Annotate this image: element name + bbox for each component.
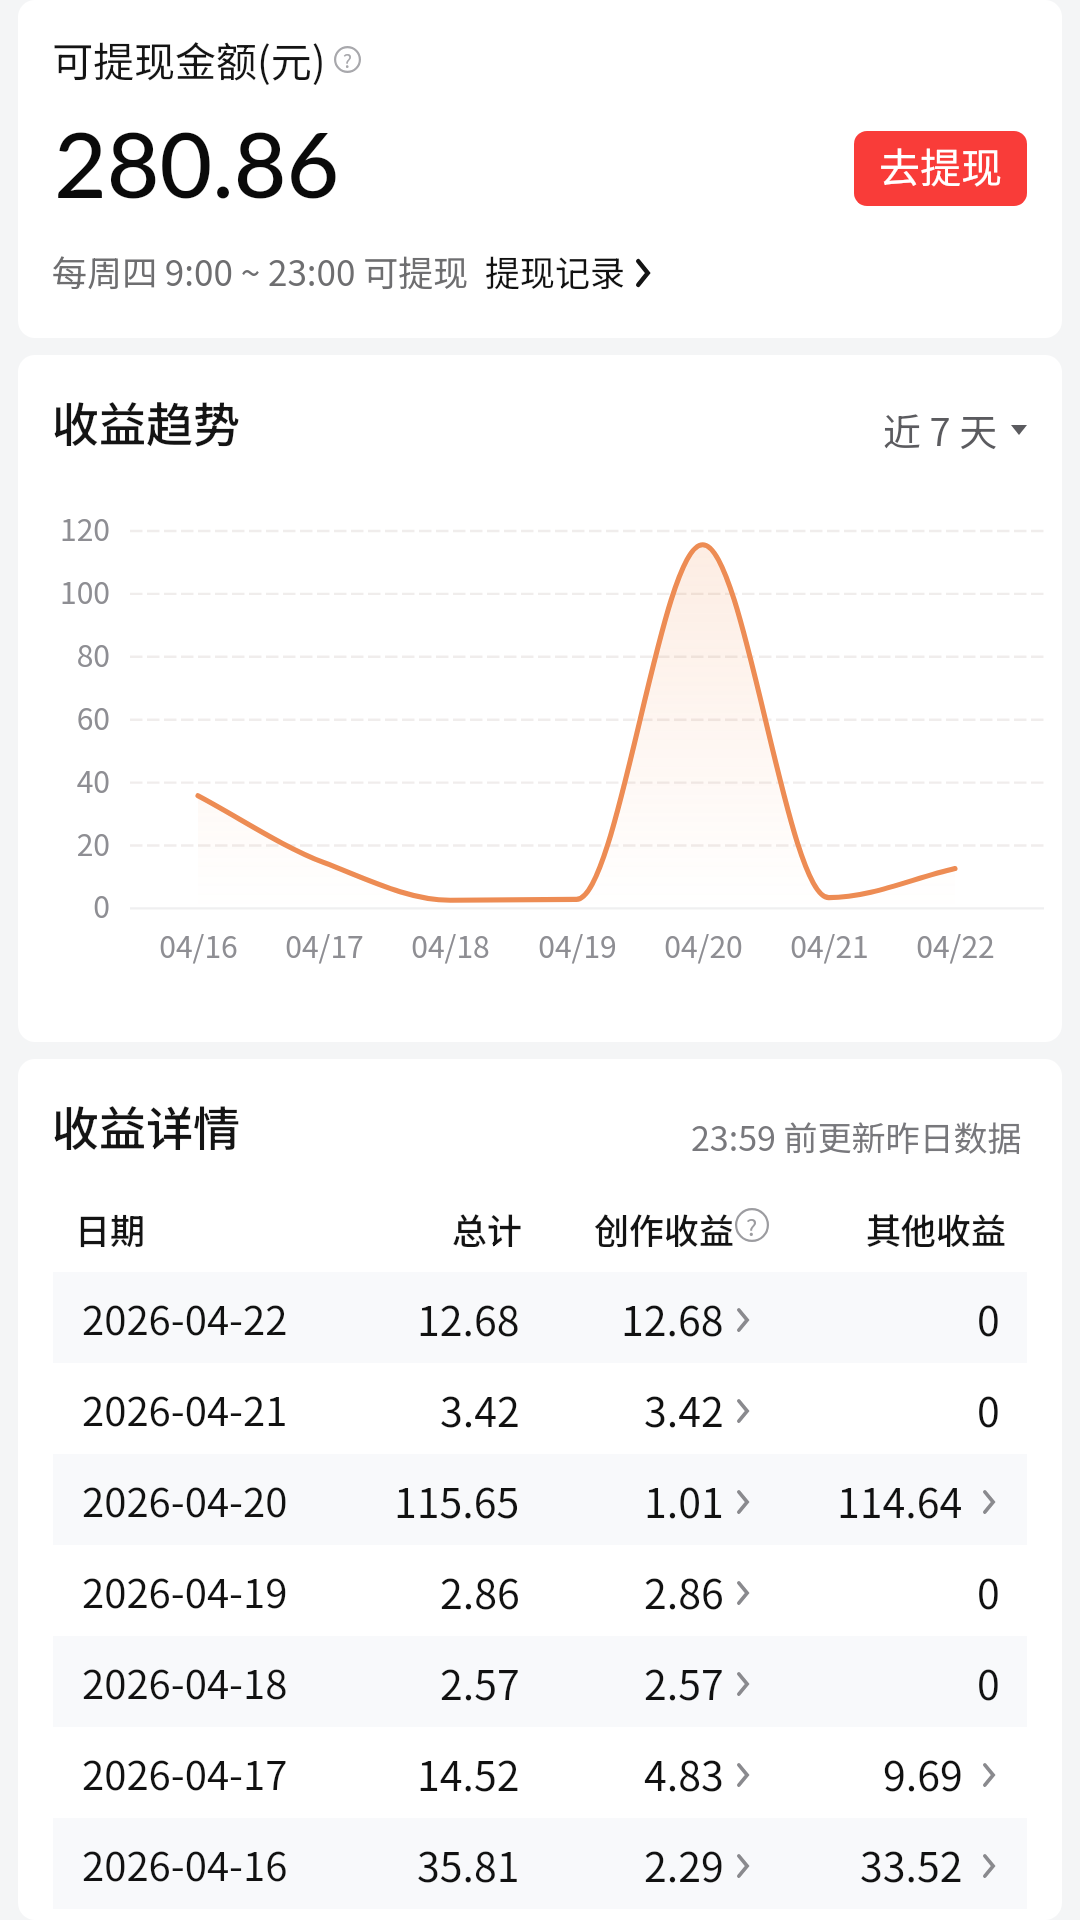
button[interactable]: 2026-04-20 (53, 1454, 1027, 1545)
staticText: 33.52 (860, 1834, 963, 1893)
staticText: 04/16 (159, 923, 238, 966)
staticText: 120 (60, 506, 110, 548)
staticText: 04/19 (538, 923, 617, 966)
button[interactable]: 近 7 天 (883, 402, 1027, 457)
staticText: 04/20 (664, 923, 743, 966)
staticText: 创作收益 (594, 1203, 735, 1254)
staticText: 280.86 (54, 108, 340, 217)
button[interactable]: 可提现金额说明 (334, 46, 361, 73)
staticText: 3.42 (440, 1379, 520, 1438)
staticText: 100 (60, 569, 110, 611)
staticText: 2.57 (440, 1652, 520, 1711)
staticText: 2026-04-21 (82, 1380, 288, 1438)
staticText: 2026-04-18 (82, 1653, 288, 1711)
staticText: 12.68 (417, 1288, 520, 1347)
staticText: 总计 (452, 1203, 523, 1254)
staticText: 04/22 (916, 923, 995, 966)
staticText: 0 (977, 1288, 1000, 1347)
staticText: 114.64 (837, 1470, 963, 1529)
staticText: 2.86 (440, 1561, 520, 1620)
button[interactable]: 去提现 (854, 131, 1027, 206)
staticText: 0 (977, 1652, 1000, 1711)
staticText: 0 (93, 883, 110, 925)
staticText: 0 (977, 1561, 1000, 1620)
staticText: 0 (977, 1379, 1000, 1438)
staticText: ? (746, 1208, 758, 1242)
button[interactable]: 2026-04-19 (53, 1545, 1027, 1636)
button[interactable]: 2026-04-22 (53, 1272, 1027, 1363)
staticText: 其他收益 (866, 1203, 1007, 1254)
staticText: 2.57 (644, 1652, 724, 1711)
staticText: 2026-04-20 (82, 1471, 288, 1529)
staticText: 20 (76, 821, 110, 863)
button[interactable]: 2026-04-17 (53, 1727, 1027, 1818)
button[interactable]: 2026-04-21 (53, 1363, 1027, 1454)
staticText: 提现记录 (485, 245, 626, 296)
staticText: 40 (76, 758, 110, 800)
staticText: 日期 (75, 1203, 146, 1254)
staticText: 去提现 (879, 135, 1002, 194)
staticText: 80 (76, 632, 110, 674)
button[interactable]: 2026-04-18 (53, 1636, 1027, 1727)
staticText: 04/18 (411, 923, 490, 966)
staticText: 近 7 天 (883, 402, 998, 457)
staticText: 3.42 (644, 1379, 724, 1438)
staticText: 23:59 前更新昨日数据 (691, 1112, 1022, 1161)
staticText: 2026-04-22 (82, 1289, 288, 1347)
staticText: 12.68 (621, 1288, 724, 1347)
staticText: 收益趋势 (52, 387, 240, 455)
button[interactable]: 提现记录 (485, 245, 650, 296)
staticText: 9.69 (883, 1743, 963, 1802)
staticText: 14.52 (417, 1743, 520, 1802)
staticText: 2.86 (644, 1561, 724, 1620)
staticText: 可提现金额(元) (52, 29, 326, 88)
button[interactable]: 创作收益说明 (735, 1208, 769, 1242)
staticText: 35.81 (417, 1834, 520, 1893)
staticText: 04/21 (790, 923, 869, 966)
staticText: 2.29 (644, 1834, 724, 1893)
staticText: 4.83 (644, 1743, 724, 1802)
staticText: 2026-04-16 (82, 1835, 288, 1893)
staticText: ? (343, 46, 352, 73)
staticText: 115.65 (394, 1470, 520, 1529)
button[interactable]: 2026-04-16 (53, 1818, 1027, 1909)
staticText: 每周四 9:00 ~ 23:00 可提现 (52, 245, 469, 296)
staticText: 60 (76, 695, 110, 737)
staticText: 04/17 (285, 923, 364, 966)
staticText: 1.01 (644, 1470, 724, 1529)
staticText: 2026-04-19 (82, 1562, 288, 1620)
staticText: 收益详情 (52, 1091, 240, 1159)
staticText: 2026-04-17 (82, 1744, 288, 1802)
